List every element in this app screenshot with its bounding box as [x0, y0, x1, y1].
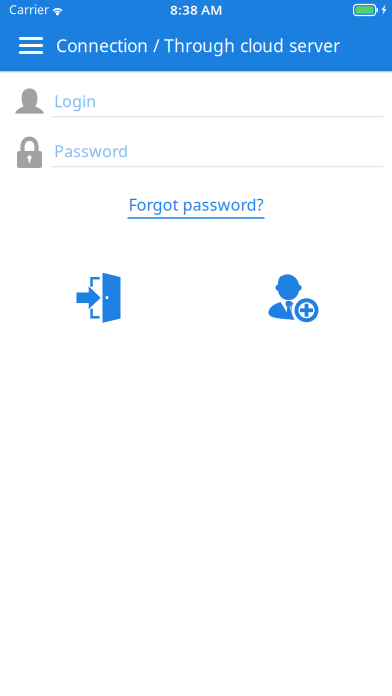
- staticText: Login: [54, 90, 96, 112]
- staticText: Connection / Through cloud server: [56, 34, 340, 57]
- button[interactable]: Forgot password?: [119, 189, 272, 224]
- button[interactable]: Password: [0, 136, 392, 170]
- staticText: Forgot password?: [128, 194, 263, 215]
- button[interactable]: Menu: [6, 23, 56, 67]
- button[interactable]: Login: [0, 86, 392, 120]
- staticText: Carrier: [9, 1, 49, 17]
- staticText: 8:38 AM: [170, 1, 222, 18]
- button[interactable]: Sign in: [49, 265, 147, 331]
- staticText: Password: [54, 140, 128, 162]
- button[interactable]: Register: [244, 265, 342, 331]
